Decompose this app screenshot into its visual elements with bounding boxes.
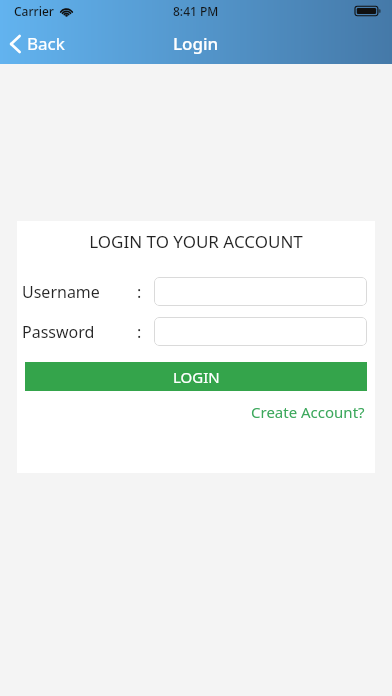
staticText: LOGIN TO YOUR ACCOUNT (17, 230, 375, 253)
button[interactable]: Back (0, 28, 77, 59)
staticText: Back (27, 32, 65, 55)
button[interactable]: Username input field (154, 277, 367, 306)
button[interactable]: Create Account? (249, 399, 367, 425)
button[interactable]: LOGIN (25, 362, 367, 391)
staticText: : (137, 281, 142, 303)
button[interactable]: Password input field (154, 317, 367, 346)
staticText: Login (173, 32, 219, 55)
staticText: : (137, 321, 142, 343)
staticText: Username (22, 281, 137, 303)
staticText: Create Account? (251, 402, 365, 422)
staticText: LOGIN (173, 367, 220, 387)
staticText: 8:41 PM (173, 3, 219, 19)
staticText: Carrier (14, 3, 54, 19)
staticText: Password (22, 321, 137, 343)
